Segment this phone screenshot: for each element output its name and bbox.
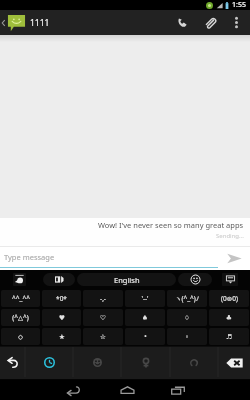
staticText: Type message [4, 252, 55, 262]
button[interactable]: Recent [25, 346, 73, 379]
button[interactable]: ♢ [167, 309, 207, 326]
button[interactable]: Hide keyboard [222, 273, 238, 286]
staticText: ★ [59, 333, 65, 341]
staticText: English [114, 275, 140, 285]
staticText: '--' [141, 294, 149, 303]
staticText: Sending... [216, 232, 244, 240]
button[interactable]: Input settings [13, 273, 26, 286]
button[interactable]: ^^_^^ [1, 290, 40, 307]
button[interactable]: '--' [125, 290, 165, 307]
staticText: 1:55 [232, 0, 246, 10]
button[interactable]: (^△^) [1, 309, 40, 326]
button[interactable]: ♬ [209, 328, 249, 345]
staticText: ♬ [226, 333, 232, 341]
staticText: ^^_^^ [12, 294, 30, 303]
button[interactable]: Undo [0, 346, 25, 379]
button[interactable]: English [77, 273, 176, 286]
button[interactable]: Home [107, 380, 147, 400]
button[interactable]: Emoticons [73, 346, 121, 379]
button[interactable]: ★ [42, 328, 81, 345]
staticText: (^△^) [12, 313, 29, 322]
button[interactable]: ♠ [125, 309, 165, 326]
button[interactable]: ☆ [83, 328, 123, 345]
button[interactable]: Wow! I've never seen so many great apps [0, 218, 250, 246]
button[interactable]: Emoji [178, 273, 212, 286]
button[interactable]: Attach [196, 10, 223, 35]
button[interactable]: ♣ [209, 309, 249, 326]
button[interactable]: ♥ [42, 309, 81, 326]
button[interactable]: (0⊚0) [209, 290, 249, 307]
staticText: ☆ [100, 333, 106, 341]
staticText: -,- [100, 294, 106, 303]
button[interactable]: • [125, 328, 165, 345]
button[interactable]: ◇ [1, 328, 40, 345]
staticText: ♣ [226, 314, 232, 322]
staticText: 1111 [30, 17, 50, 29]
button[interactable]: Voice input [43, 273, 75, 286]
staticText: ◇ [18, 333, 23, 341]
button[interactable]: Delete [218, 346, 250, 379]
staticText: *0* [56, 294, 67, 303]
button[interactable]: Symbols [121, 346, 170, 379]
staticText: Wow! I've never seen so many great apps [98, 220, 244, 230]
button[interactable]: Redo [170, 346, 218, 379]
button[interactable]: ヽ(^_^)ﾉ [167, 290, 207, 307]
button[interactable]: -,- [83, 290, 123, 307]
staticText: • [144, 332, 147, 341]
button[interactable]: Back [53, 380, 93, 400]
staticText: (0⊚0) [221, 294, 238, 303]
button[interactable]: ♡ [83, 309, 123, 326]
button[interactable]: ◦ [167, 328, 207, 345]
button[interactable]: Call [169, 10, 196, 35]
button[interactable]: Recents [158, 380, 198, 400]
staticText: ヽ(^_^)ﾉ [175, 294, 199, 303]
staticText: ◦ [185, 333, 189, 341]
staticText: ♠ [142, 314, 148, 322]
button[interactable]: *0* [42, 290, 81, 307]
staticText: ♥ [59, 314, 65, 322]
button[interactable]: More options [223, 10, 249, 35]
staticText: ♢ [184, 314, 190, 322]
staticText: ♡ [100, 314, 106, 322]
button[interactable]: Send [218, 247, 250, 270]
